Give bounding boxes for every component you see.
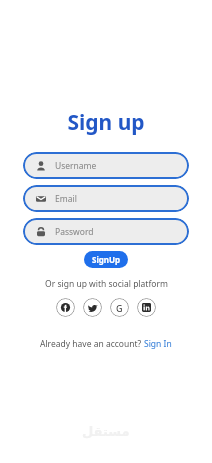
button[interactable]: Sign up with Google (110, 298, 129, 317)
button[interactable]: Email (23, 185, 189, 212)
staticText: Sign up (67, 108, 145, 137)
button[interactable]: SignUp (84, 251, 128, 268)
staticText: G (116, 302, 123, 314)
staticText: Sign In (144, 338, 172, 350)
staticText: Email (55, 193, 77, 205)
button[interactable]: Password (23, 218, 189, 245)
button[interactable]: Sign up with LinkedIn (137, 298, 156, 317)
staticText: مستقل (82, 424, 130, 439)
staticText: Already have an account? (40, 338, 144, 350)
staticText: SignUp (92, 254, 121, 265)
staticText: Username (55, 160, 97, 172)
button[interactable]: Sign up with Facebook (56, 298, 75, 317)
staticText: Or sign up with social platform (45, 278, 168, 290)
button[interactable]: Username (23, 152, 189, 179)
staticText: Password (55, 226, 94, 238)
button[interactable]: Already have an account? (40, 338, 172, 350)
button[interactable]: Sign up with Twitter (83, 298, 102, 317)
